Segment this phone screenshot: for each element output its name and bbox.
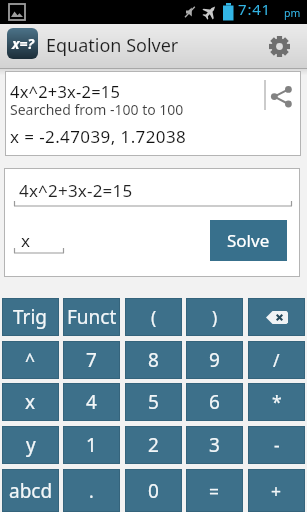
staticText: 3 [209,432,220,458]
staticText: y [26,432,36,458]
button[interactable]: ( [125,298,182,336]
button[interactable]: + [248,469,305,512]
button[interactable] [248,298,305,336]
button[interactable]: 7 [63,341,120,379]
button[interactable]: Solve [210,220,287,261]
button[interactable]: 2 [125,426,182,464]
button[interactable]: 8 [125,341,182,379]
staticText: x [21,229,30,252]
staticText: x = -2.47039, 1.72038 [10,125,187,148]
staticText: pm [284,6,301,20]
button[interactable]: 1 [63,426,120,464]
button[interactable] [269,36,290,57]
staticText: 4 [86,389,97,415]
button[interactable]: 6 [186,383,243,421]
staticText: ^ [25,348,36,372]
button[interactable]: 4 [63,383,120,421]
button[interactable]: ^ [2,341,59,379]
button[interactable]: x [2,383,59,421]
staticText: Searched from -100 to 100 [10,100,184,119]
button[interactable]: ) [186,298,243,336]
staticText: 5 [148,389,159,415]
staticText: = [209,479,220,503]
staticText: ) [212,305,218,329]
staticText: + [271,479,282,503]
staticText: Equation Solver [46,33,179,58]
staticText: 8 [148,347,159,373]
button[interactable]: 0 [125,469,182,512]
button[interactable]: * [248,383,305,421]
button[interactable]: / [248,341,305,379]
staticText: . [89,479,94,503]
button[interactable]: = [186,469,243,512]
staticText: ( [151,305,157,329]
button[interactable]: 5 [125,383,182,421]
staticText: * [272,390,282,414]
staticText: 7 [86,347,97,373]
button[interactable]: Funct [63,298,120,336]
staticText: Funct [67,304,117,330]
staticText: 4x^2+3x-2=15 [19,179,133,202]
staticText: 2 [148,432,159,458]
staticText: x=? [12,34,34,53]
button[interactable]: - [248,426,305,464]
staticText: 6 [209,389,220,415]
button[interactable]: y [2,426,59,464]
staticText: x [25,389,36,415]
button[interactable]: 9 [186,341,243,379]
button[interactable] [260,79,300,113]
button[interactable]: 3 [186,426,243,464]
staticText: 0 [148,478,159,504]
button[interactable]: Trig [2,298,59,336]
button[interactable]: abcd [2,469,59,512]
staticText: 7:41 [238,0,271,19]
staticText: Trig [13,304,48,330]
staticText: 4x^2+3x-2=15 [10,80,121,102]
staticText: - [274,433,280,457]
staticText: Solve [227,229,270,252]
button[interactable]: . [63,469,120,512]
staticText: 9 [209,347,220,373]
staticText: 1 [86,432,97,458]
staticText: / [273,348,280,372]
staticText: abcd [9,478,53,504]
